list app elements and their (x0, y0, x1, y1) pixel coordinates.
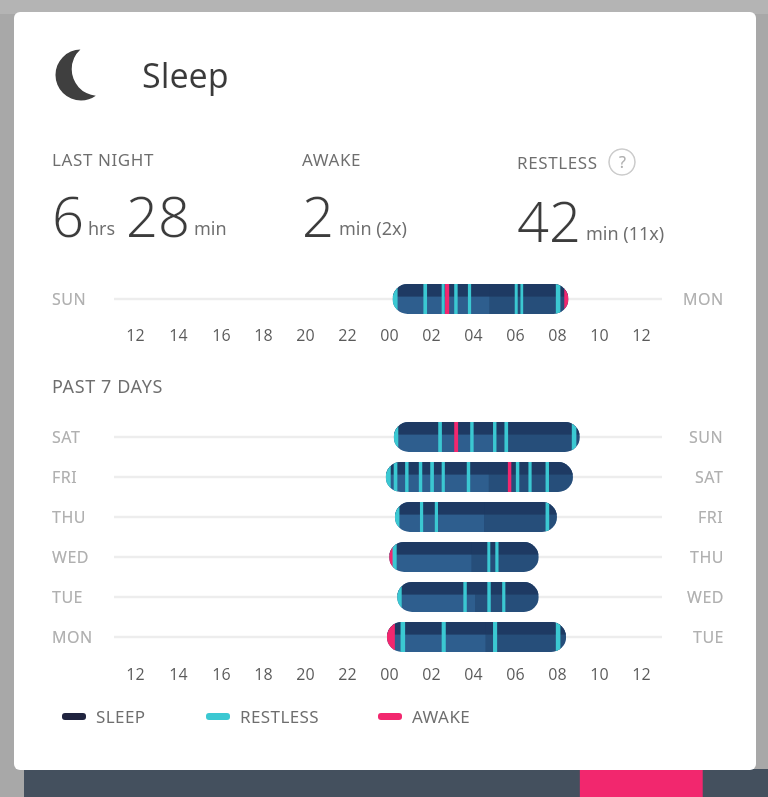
staticText: 22 (338, 663, 357, 685)
staticText: 16 (212, 663, 231, 685)
button[interactable]: FRI (52, 457, 724, 497)
staticText: 10 (590, 324, 609, 346)
staticText: SUN (52, 288, 87, 310)
staticText: THU (690, 546, 724, 568)
staticText: 18 (254, 663, 273, 685)
staticText: 20 (296, 324, 315, 346)
staticText: 16 (212, 324, 231, 346)
button[interactable]: SLEEP (62, 705, 146, 728)
staticText: FRI (698, 506, 724, 528)
staticText: 02 (422, 663, 441, 685)
staticText: MON (683, 288, 724, 310)
staticText: SAT (52, 426, 81, 448)
staticText: 00 (380, 324, 399, 346)
button[interactable]: MON (52, 617, 724, 657)
staticText: TUE (52, 586, 83, 608)
staticText: FRI (52, 466, 78, 488)
staticText: TUE (693, 626, 724, 648)
staticText: min (194, 216, 227, 241)
button[interactable]: SUN (52, 280, 724, 318)
button[interactable]: WED (52, 537, 724, 577)
staticText: 6 (52, 177, 84, 253)
staticText: 14 (169, 324, 188, 346)
staticText: AWAKE (302, 148, 362, 171)
staticText: 20 (296, 663, 315, 685)
staticText: Sleep (142, 52, 229, 98)
staticText: RESTLESS (517, 151, 598, 174)
staticText: PAST 7 DAYS (52, 374, 163, 399)
button[interactable]: SAT (52, 417, 724, 457)
staticText: 00 (380, 663, 399, 685)
staticText: 08 (548, 663, 567, 685)
staticText: MON (52, 626, 93, 648)
staticText: 06 (506, 663, 525, 685)
button[interactable]: TUE (52, 577, 724, 617)
staticText: 04 (464, 663, 483, 685)
button[interactable]: What is restless sleep? (608, 148, 636, 176)
staticText: 12 (126, 663, 145, 685)
staticText: 10 (590, 663, 609, 685)
staticText: 18 (254, 324, 273, 346)
button[interactable]: THU (52, 497, 724, 537)
staticText: 08 (548, 324, 567, 346)
staticText: WED (687, 586, 724, 608)
button[interactable]: RESTLESS (206, 705, 320, 728)
staticText: 06 (506, 324, 525, 346)
staticText: 2 (302, 177, 334, 253)
staticText: SUN (689, 426, 724, 448)
staticText: RESTLESS (240, 705, 320, 728)
staticText: hrs (88, 216, 116, 241)
staticText: 42 (517, 182, 581, 258)
staticText: 02 (422, 324, 441, 346)
staticText: 14 (169, 663, 188, 685)
button[interactable]: AWAKE (378, 705, 471, 728)
staticText: 28 (126, 177, 190, 253)
staticText: SLEEP (96, 705, 146, 728)
staticText: 12 (632, 324, 651, 346)
staticText: AWAKE (412, 705, 471, 728)
staticText: THU (52, 506, 86, 528)
staticText: SAT (695, 466, 724, 488)
staticText: min (11x) (586, 221, 665, 246)
staticText: min (2x) (339, 216, 407, 241)
staticText: ? (619, 151, 626, 173)
staticText: 22 (338, 324, 357, 346)
staticText: 04 (464, 324, 483, 346)
staticText: 12 (126, 324, 145, 346)
staticText: WED (52, 546, 89, 568)
staticText: LAST NIGHT (52, 148, 155, 171)
staticText: 12 (632, 663, 651, 685)
